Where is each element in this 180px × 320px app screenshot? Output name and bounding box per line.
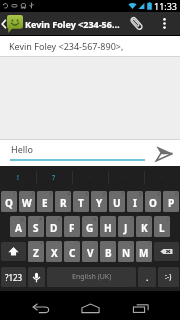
- staticText: 1: [13, 191, 16, 198]
- staticText: W: [22, 196, 32, 210]
- button[interactable]: ?123: [1, 267, 26, 287]
- button[interactable]: £: [46, 216, 62, 237]
- button[interactable]: Kevin Foley <234-567-890>,: [0, 36, 180, 56]
- button[interactable]: 7: [109, 191, 125, 212]
- staticText: D: [50, 221, 58, 235]
- staticText: ': [77, 241, 79, 248]
- staticText: J: [124, 221, 128, 235]
- button[interactable]: 5: [73, 191, 89, 212]
- staticText: @: [20, 216, 25, 223]
- staticText: English (UK): [72, 272, 112, 282]
- staticText: Kevin Foley <234-56…: [25, 18, 120, 30]
- staticText: £: [58, 216, 61, 223]
- staticText: N: [122, 246, 131, 260]
- button[interactable]: ;: [100, 241, 116, 262]
- staticText: C: [69, 246, 76, 260]
- button[interactable]: Send: [148, 140, 180, 166]
- button[interactable]: ?: [136, 241, 152, 262]
- button[interactable]: #: [28, 216, 44, 237]
- button[interactable]: Recents: [120, 291, 180, 320]
- staticText: :-): [165, 272, 172, 282]
- button[interactable]: !: [118, 241, 134, 262]
- staticText: I: [133, 196, 137, 210]
- button[interactable]: Hello: [0, 140, 148, 166]
- staticText: &: [93, 216, 97, 223]
- staticText: G: [86, 221, 94, 235]
- button[interactable]: Attach: [124, 12, 148, 35]
- button[interactable]: (: [136, 216, 152, 237]
- staticText: :: [95, 241, 97, 248]
- staticText: 5: [85, 191, 88, 198]
- staticText: M: [139, 246, 149, 260]
- button[interactable]: 8: [127, 191, 143, 212]
- button[interactable]: Backspace: [154, 242, 179, 261]
- staticText: (: [149, 216, 151, 223]
- staticText: +: [130, 216, 133, 223]
- staticText: ?123: [5, 272, 23, 283]
- staticText: Hello: [11, 143, 33, 155]
- button[interactable]: 6: [91, 191, 107, 212]
- staticText: 6: [103, 191, 106, 198]
- button[interactable]: ': [64, 241, 80, 262]
- staticText: 7: [121, 191, 124, 198]
- staticText: S: [33, 221, 39, 235]
- staticText: 2: [31, 191, 34, 198]
- button[interactable]: Navigate up: [0, 12, 23, 35]
- staticText: E: [42, 196, 48, 210]
- staticText: ?: [148, 241, 151, 248]
- staticText: H: [104, 221, 112, 235]
- button[interactable]: More options: [148, 12, 180, 35]
- staticText: *: [40, 241, 43, 248]
- staticText: T: [78, 196, 84, 210]
- button[interactable]: !: [0, 166, 36, 189]
- button[interactable]: @: [10, 216, 26, 237]
- staticText: ;: [113, 241, 115, 248]
- staticText: ·: [125, 173, 127, 183]
- staticText: R: [60, 196, 67, 210]
- button[interactable]: Home: [60, 291, 120, 320]
- button[interactable]: 1: [1, 191, 17, 212]
- staticText: A: [15, 221, 22, 235]
- staticText: !: [17, 173, 19, 183]
- button[interactable]: Voice input: [28, 267, 45, 287]
- staticText: 3: [49, 191, 52, 198]
- staticText: X: [51, 246, 58, 260]
- button[interactable]: &: [82, 216, 98, 237]
- staticText: ": [58, 241, 61, 248]
- button[interactable]: :-): [158, 267, 179, 287]
- button[interactable]: 9: [145, 191, 161, 212]
- button[interactable]: :: [82, 241, 98, 262]
- staticText: 9: [157, 191, 160, 198]
- button[interactable]: 0: [163, 191, 179, 212]
- button[interactable]: _: [64, 216, 80, 237]
- staticText: !: [131, 241, 133, 248]
- staticText: ?: [52, 173, 56, 183]
- staticText: B: [105, 246, 112, 260]
- button[interactable]: ": [46, 241, 62, 262]
- button[interactable]: *: [28, 241, 44, 262]
- staticText: 8: [139, 191, 142, 198]
- staticText: F: [69, 221, 75, 235]
- button[interactable]: ): [154, 216, 170, 237]
- button[interactable]: ?: [36, 166, 72, 189]
- staticText: ·: [161, 173, 163, 183]
- staticText: K: [141, 221, 148, 235]
- button[interactable]: 3: [37, 191, 53, 212]
- button[interactable]: English (UK): [47, 267, 136, 287]
- button[interactable]: .: [138, 267, 156, 287]
- button[interactable]: Back: [0, 291, 60, 320]
- staticText: U: [113, 196, 121, 210]
- staticText: Q: [5, 196, 13, 210]
- staticText: 0: [175, 191, 178, 198]
- button[interactable]: +: [118, 216, 134, 237]
- button[interactable]: -: [100, 216, 116, 237]
- button[interactable]: Shift: [1, 242, 26, 261]
- staticText: .: [146, 271, 149, 283]
- button[interactable]: 4: [55, 191, 71, 212]
- staticText: Kevin Foley <234-567-890>,: [9, 40, 124, 52]
- button[interactable]: 2: [19, 191, 35, 212]
